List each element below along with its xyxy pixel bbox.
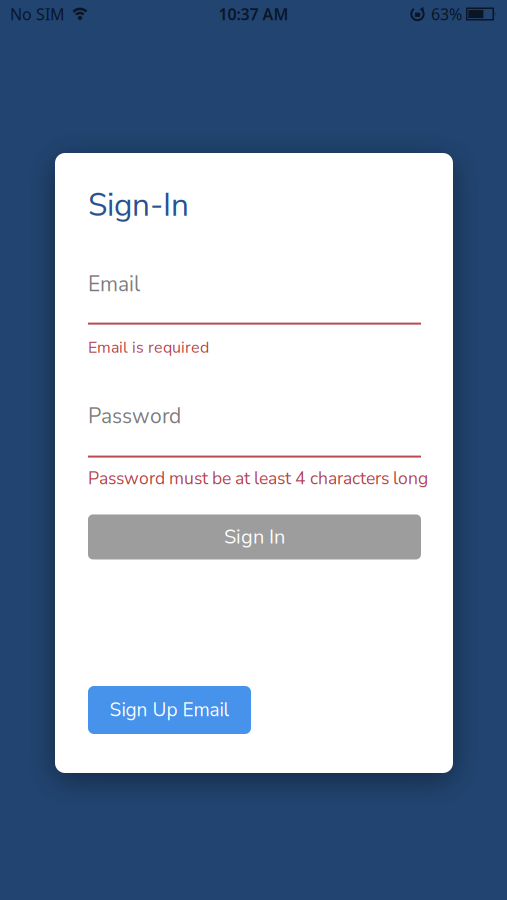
staticText: Password must be at least 4 characters l… bbox=[88, 467, 428, 490]
staticText: 63% bbox=[431, 3, 462, 25]
staticText: Email is required bbox=[88, 337, 209, 358]
button[interactable]: Sign Up Email bbox=[88, 686, 251, 734]
staticText: Sign-In bbox=[88, 184, 189, 227]
staticText: Sign Up Email bbox=[109, 697, 229, 723]
staticText: Email bbox=[88, 270, 140, 299]
staticText: 10:37 AM bbox=[218, 3, 288, 25]
staticText: Sign In bbox=[224, 523, 285, 551]
staticText: Password bbox=[88, 402, 181, 430]
staticText: No SIM bbox=[10, 3, 65, 25]
button[interactable]: Sign In bbox=[88, 514, 421, 559]
